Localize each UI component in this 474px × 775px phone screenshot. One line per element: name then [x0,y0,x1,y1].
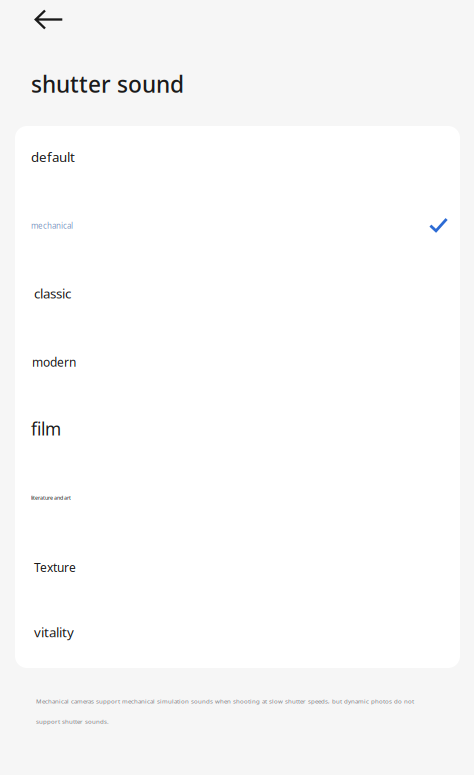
button[interactable]: film [15,397,460,465]
button[interactable]: modern [15,329,460,397]
staticText: shutter sound [31,69,184,99]
staticText: Texture [34,559,76,575]
staticText: classic [34,284,71,302]
button[interactable]: Back [26,4,72,36]
button[interactable]: literature and art [15,465,460,533]
staticText: mechanical [31,220,73,231]
staticText: Mechanical cameras support mechanical si… [36,697,414,725]
button[interactable]: vitality [15,600,460,668]
button[interactable]: Texture [15,532,460,600]
staticText: literature and art [31,494,71,501]
button[interactable]: mechanical [15,194,460,262]
staticText: vitality [34,623,74,641]
button[interactable]: classic [15,261,460,329]
button[interactable]: default [15,126,460,194]
staticText: film [31,417,61,440]
staticText: modern [32,354,76,370]
staticText: default [31,148,75,166]
